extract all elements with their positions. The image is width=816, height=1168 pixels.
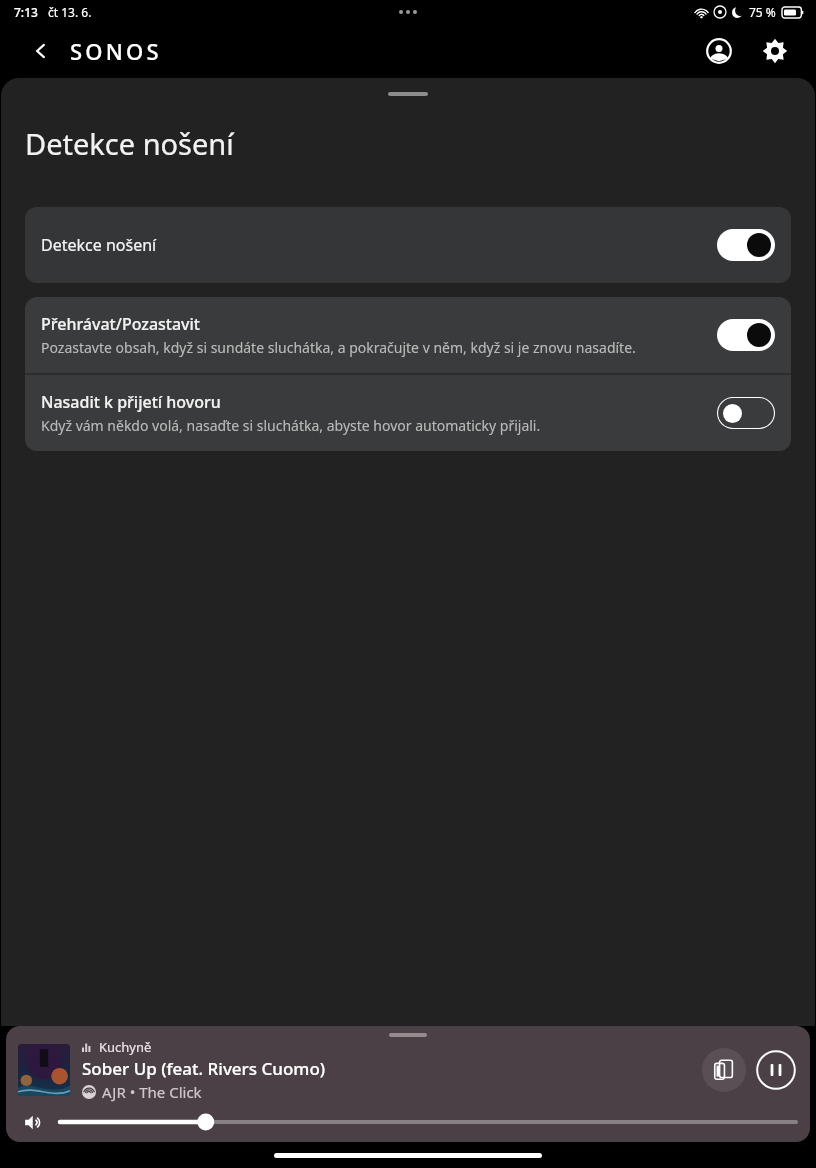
button[interactable]: Back <box>26 36 56 66</box>
staticText: AJR • The Click <box>102 1082 202 1102</box>
button[interactable]: Transfer playback <box>702 1048 746 1092</box>
button[interactable]: Detekce nošení <box>25 207 791 283</box>
staticText: Když vám někdo volá, nasaďte si sluchátk… <box>41 416 541 435</box>
button[interactable]: Nasadit k přijetí hovoru <box>25 375 791 451</box>
staticText: Detekce nošení <box>25 124 234 163</box>
button[interactable]: Kuchyně <box>6 1026 810 1142</box>
staticText: Pozastavte obsah, když si sundáte sluchá… <box>41 338 636 357</box>
staticText: Přehrávat/Pozastavit <box>41 313 200 335</box>
staticText: 7:13 <box>14 4 38 20</box>
button[interactable]: Settings <box>758 34 792 68</box>
staticText: Kuchyně <box>99 1038 152 1056</box>
button[interactable]: Account <box>702 34 736 68</box>
button[interactable]: Toggle off <box>717 397 775 429</box>
other: Volume <box>20 1109 46 1135</box>
staticText: SONOS <box>70 36 162 66</box>
staticText: Detekce nošení <box>41 234 157 256</box>
button[interactable]: Toggle on <box>717 229 775 261</box>
staticText: Sober Up (feat. Rivers Cuomo) <box>82 1057 326 1080</box>
button[interactable]: Přehrávat/Pozastavit <box>25 297 791 373</box>
button[interactable]: Toggle on <box>717 319 775 351</box>
staticText: čt 13. 6. <box>48 4 92 20</box>
staticText: Nasadit k přijetí hovoru <box>41 391 221 413</box>
button[interactable]: Pause <box>754 1048 798 1092</box>
staticText: 75 % <box>749 4 776 20</box>
